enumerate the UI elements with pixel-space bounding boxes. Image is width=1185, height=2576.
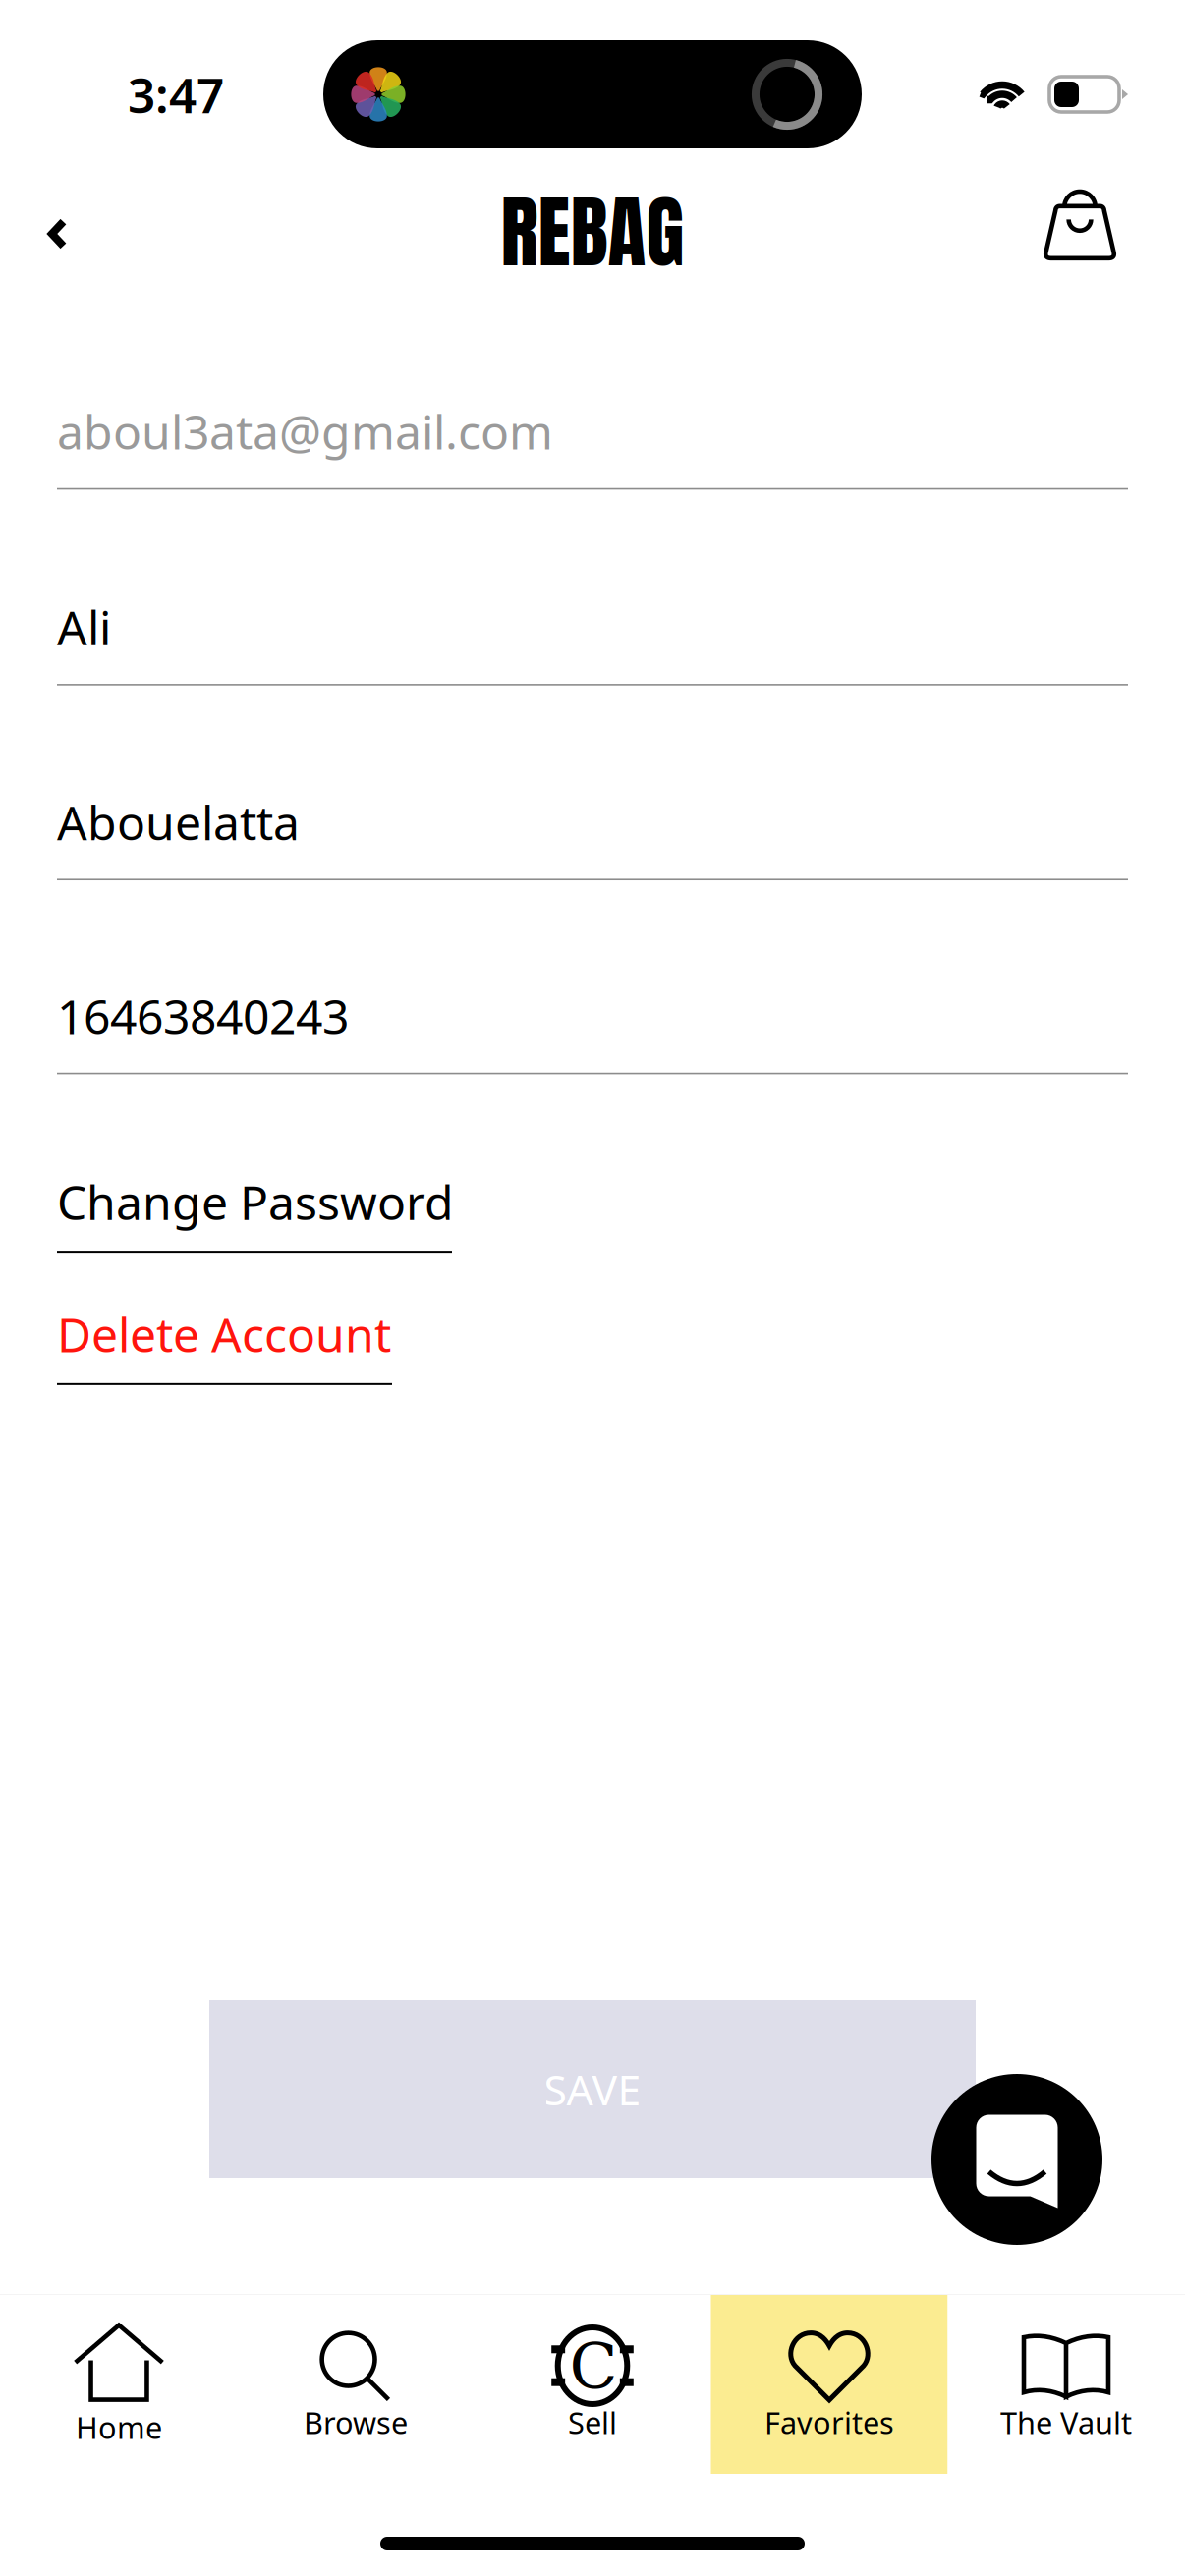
button[interactable]: Change Password — [57, 1170, 452, 1253]
staticText: 16463840243 — [57, 984, 349, 1047]
button[interactable]: The Vault — [948, 2295, 1185, 2474]
button[interactable]: Browse — [237, 2295, 474, 2474]
staticText: REBAG — [501, 173, 684, 291]
button[interactable]: Delete Account — [57, 1303, 392, 1385]
button[interactable]: Back — [0, 179, 116, 289]
button[interactable]: C — [474, 2295, 711, 2474]
button[interactable]: SAVE — [209, 2000, 976, 2178]
staticText: Sell — [568, 2402, 617, 2442]
staticText: Delete Account — [57, 1303, 391, 1365]
staticText: Browse — [304, 2402, 408, 2442]
staticText: Abouelatta — [57, 791, 300, 853]
staticText: aboul3ata@gmail.com — [57, 400, 553, 462]
staticText: Home — [76, 2407, 162, 2447]
button[interactable]: Home — [0, 2295, 237, 2474]
button[interactable]: Shopping bag — [1049, 179, 1185, 289]
staticText: Ali — [57, 596, 111, 658]
staticText: Change Password — [57, 1170, 454, 1233]
staticText: C — [569, 2330, 618, 2403]
staticText: 3:47 — [128, 62, 224, 126]
staticText: Favorites — [764, 2402, 894, 2442]
staticText: SAVE — [544, 2061, 641, 2117]
staticText: The Vault — [1000, 2402, 1132, 2442]
button[interactable]: Chat support — [931, 2074, 1102, 2245]
button[interactable]: Favorites — [711, 2295, 948, 2474]
